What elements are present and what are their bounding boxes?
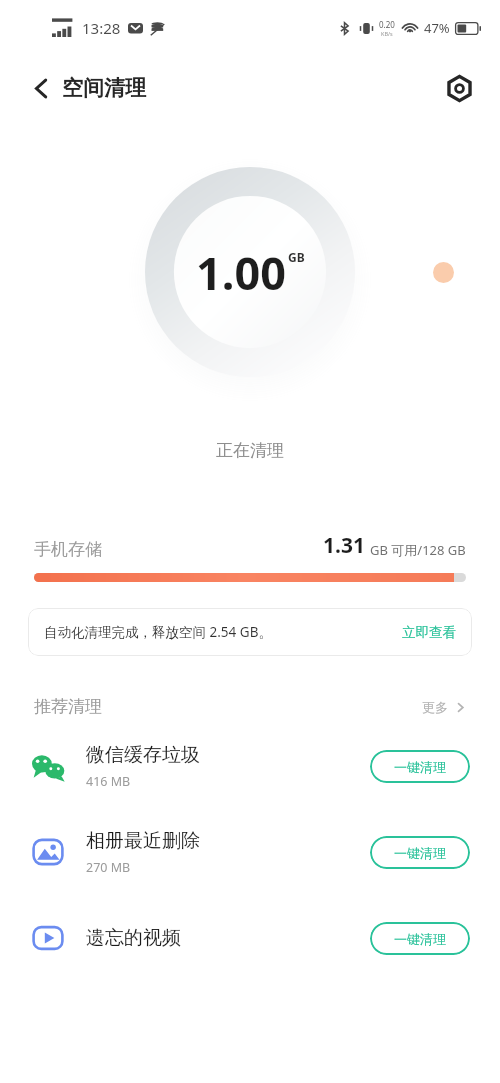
staticText: 416 MB [86,773,131,790]
staticText: GB 可用/128 GB [370,541,466,559]
button[interactable]: Settings [438,67,480,109]
staticText: 相册最近删除 [86,829,200,853]
staticText: KB/s [381,30,393,37]
staticText: 手机存储 [34,539,102,560]
button[interactable]: 一键清理 [370,922,470,955]
staticText: 0.20 [379,19,395,30]
staticText: GB [288,249,305,265]
button[interactable]: 更多 [422,699,466,715]
staticText: 立即查看 [402,624,456,641]
button[interactable]: 自动化清理完成，释放空间 2.54 GB。 [28,608,472,656]
staticText: 遗忘的视频 [86,926,181,950]
button[interactable]: Back [18,65,64,111]
button[interactable]: 一键清理 [370,836,470,869]
staticText: 空间清理 [62,75,146,101]
staticText: 正在清理 [216,440,284,461]
button[interactable]: 微信缓存垃圾 [0,731,500,801]
button[interactable]: 一键清理 [370,750,470,783]
staticText: 47% [424,19,450,37]
staticText: 微信缓存垃圾 [86,743,200,767]
staticText: 一键清理 [394,845,446,861]
staticText: 270 MB [86,859,131,876]
staticText: 1.31 [323,531,365,560]
staticText: 一键清理 [394,931,446,947]
staticText: 推荐清理 [34,696,102,717]
staticText: 13:28 [82,18,121,38]
staticText: 更多 [422,699,448,715]
staticText: 1.00 [196,242,286,303]
button[interactable]: 相册最近删除 [0,817,500,887]
staticText: 自动化清理完成，释放空间 2.54 GB。 [44,623,272,641]
button[interactable]: 遗忘的视频 [0,903,500,973]
staticText: 一键清理 [394,759,446,775]
